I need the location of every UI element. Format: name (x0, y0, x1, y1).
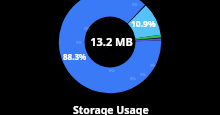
staticText: 0% (109, 68, 115, 73)
staticText: 88.3% (63, 51, 87, 62)
staticText: 13.2 MB (90, 34, 133, 49)
staticText: 0% (84, 26, 90, 31)
button[interactable]: Storage usage chart (0, 0, 220, 115)
staticText: 0% (76, 40, 82, 45)
staticText: 0% (150, 63, 156, 68)
staticText: 0% (132, 2, 138, 7)
staticText: 10.9% (131, 18, 156, 30)
staticText: 0% (140, 72, 146, 77)
staticText: Storage Usage (73, 103, 149, 115)
staticText: 0% (130, 76, 136, 81)
